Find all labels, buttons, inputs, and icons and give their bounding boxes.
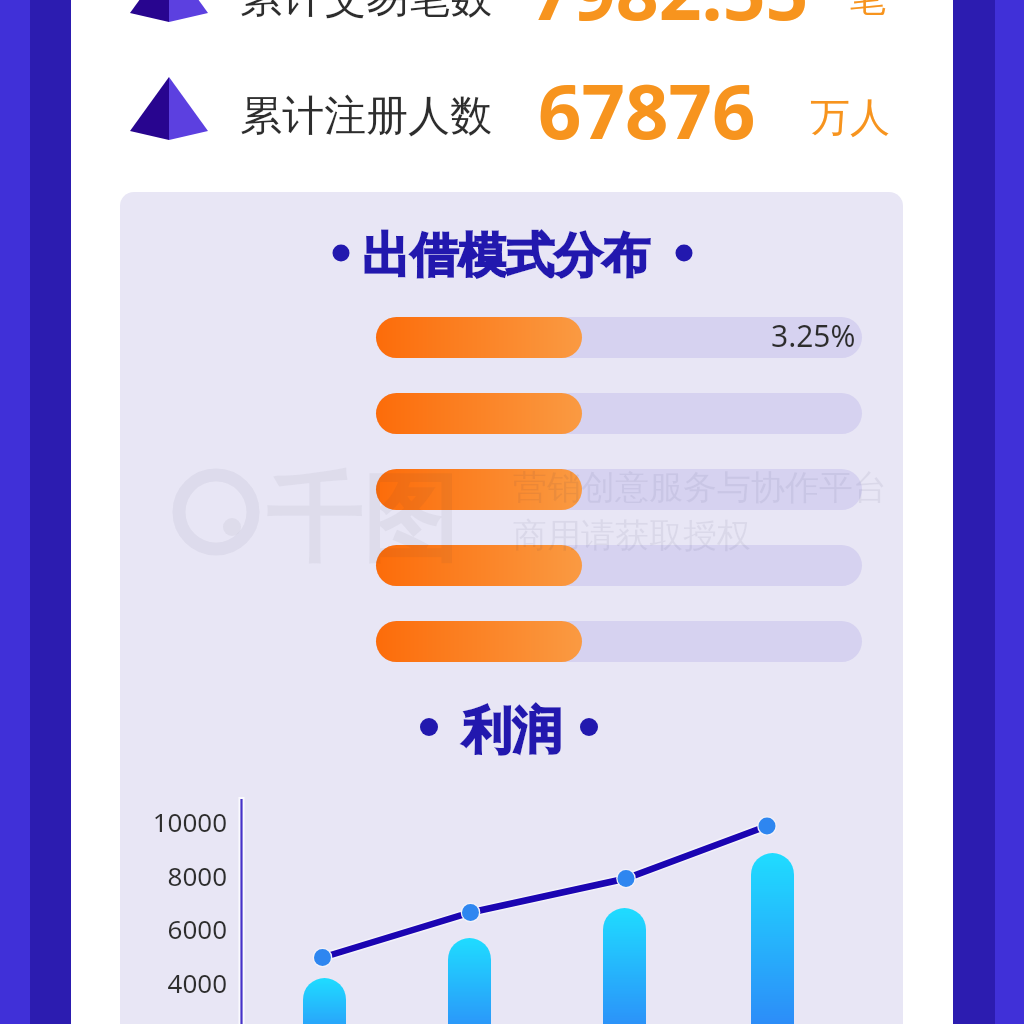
button[interactable]: 累计交易笔数 7982.55 笔 — [120, 0, 903, 60]
staticText: 7982.55 — [530, 0, 809, 42]
staticText: 10000 — [67, 804, 227, 839]
button[interactable]: 出借模式 3 — [376, 465, 862, 514]
staticText: 6000 — [67, 911, 227, 946]
button[interactable]: 出借模式 4 — [376, 541, 862, 590]
staticText: 4000 — [67, 965, 227, 1000]
staticText: 累计注册人数 — [240, 90, 492, 143]
staticText: 67876 — [538, 58, 756, 162]
button[interactable]: 出借模式 5 — [376, 617, 862, 666]
staticText: 3.25% — [771, 315, 856, 356]
button[interactable]: 出借模式 2 — [376, 389, 862, 438]
staticText: 出借模式分布 — [362, 226, 650, 286]
button[interactable]: 出借模式 1 3.25% — [376, 313, 862, 362]
staticText: 利润 — [462, 700, 562, 763]
staticText: 千图 — [266, 460, 458, 581]
staticText: 营销创意服务与协作平台 — [513, 466, 887, 509]
staticText: 万人 — [810, 92, 890, 142]
staticText: 累计交易笔数 — [240, 0, 492, 25]
staticText: 笔 — [848, 0, 886, 22]
staticText: 商用请获取授权 — [513, 514, 751, 557]
button[interactable]: 出借模式分布 — [330, 222, 700, 284]
button[interactable]: 利润 — [420, 696, 600, 758]
button[interactable]: 利润走势图表 — [130, 790, 890, 1024]
button[interactable]: 累计注册人数 67876 万人 — [120, 62, 903, 182]
staticText: 8000 — [67, 858, 227, 893]
